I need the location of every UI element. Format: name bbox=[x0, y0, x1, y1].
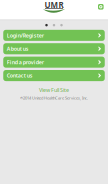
staticText: Contact us bbox=[7, 72, 33, 79]
button[interactable]: Login/Register bbox=[3, 30, 105, 41]
staticText: View Full Site bbox=[39, 86, 69, 93]
button[interactable]: About us bbox=[3, 43, 105, 54]
staticText: Login/Register bbox=[7, 32, 44, 39]
button[interactable]: Find a provider bbox=[3, 57, 105, 68]
button[interactable]: Contact us bbox=[3, 70, 105, 81]
staticText: UMR bbox=[44, 0, 63, 10]
staticText: About us bbox=[7, 45, 29, 52]
button[interactable]: View Full Site bbox=[39, 81, 69, 95]
staticText: ©2014 United HealthCare Services, Inc. bbox=[20, 95, 88, 101]
button[interactable]: Menu bbox=[98, 4, 104, 10]
staticText: Find a provider bbox=[7, 59, 44, 66]
